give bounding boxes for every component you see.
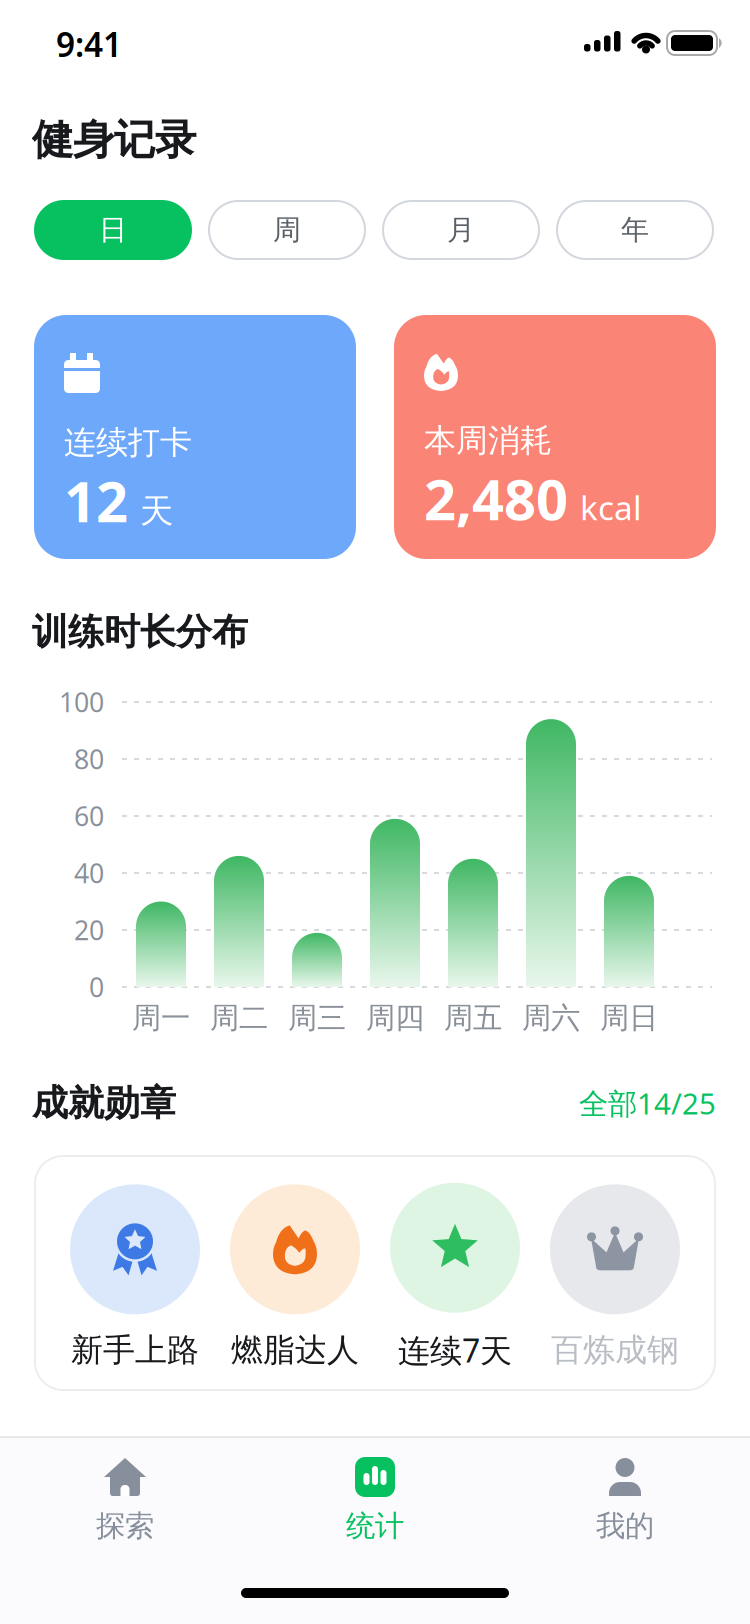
- staticText: 成就勋章: [32, 1081, 176, 1125]
- staticText: 连续打卡: [64, 423, 192, 462]
- staticText: 周四: [366, 1000, 424, 1036]
- staticText: 日: [99, 213, 127, 247]
- button[interactable]: 周: [208, 200, 366, 260]
- staticText: 60: [74, 798, 104, 834]
- staticText: 年: [621, 213, 649, 247]
- staticText: 全部14/25: [579, 1083, 716, 1122]
- button[interactable]: 年: [556, 200, 714, 260]
- staticText: 训练时长分布: [32, 610, 248, 654]
- staticText: 周日: [600, 1000, 658, 1036]
- staticText: 周: [273, 213, 301, 247]
- button[interactable]: 月: [382, 200, 540, 260]
- button[interactable]: 连续7天: [390, 1183, 520, 1371]
- staticText: kcal: [580, 485, 642, 529]
- button[interactable]: 日: [34, 200, 192, 260]
- staticText: 燃脂达人: [231, 1330, 359, 1370]
- staticText: 周五: [444, 1000, 502, 1036]
- staticText: 2,480: [424, 461, 568, 536]
- button[interactable]: 燃脂达人: [230, 1184, 360, 1370]
- staticText: 周六: [522, 1000, 580, 1036]
- staticText: 0: [89, 969, 104, 1005]
- staticText: 周二: [210, 1000, 268, 1036]
- staticText: 新手上路: [71, 1330, 199, 1370]
- button[interactable]: 探索: [0, 1449, 250, 1559]
- staticText: 天: [140, 491, 173, 531]
- staticText: 周一: [132, 1000, 190, 1036]
- button[interactable]: 统计: [250, 1449, 500, 1559]
- staticText: 统计: [346, 1508, 404, 1544]
- staticText: 百炼成钢: [551, 1330, 679, 1370]
- staticText: 周三: [288, 1000, 346, 1036]
- button[interactable]: 我的: [500, 1449, 750, 1559]
- button[interactable]: 全部14/25: [516, 1083, 716, 1122]
- staticText: 本周消耗: [424, 421, 552, 460]
- staticText: 20: [74, 912, 104, 948]
- staticText: 我的: [596, 1508, 654, 1544]
- staticText: 月: [447, 213, 475, 247]
- staticText: 100: [59, 684, 104, 720]
- staticText: 连续7天: [398, 1329, 512, 1371]
- button[interactable]: 新手上路: [70, 1184, 200, 1370]
- staticText: 12: [64, 463, 128, 538]
- staticText: 80: [74, 741, 104, 777]
- button[interactable]: 百炼成钢: [550, 1184, 680, 1370]
- staticText: 9:41: [56, 22, 122, 66]
- staticText: 40: [74, 855, 104, 891]
- staticText: 探索: [96, 1508, 154, 1544]
- staticText: 健身记录: [32, 115, 196, 165]
